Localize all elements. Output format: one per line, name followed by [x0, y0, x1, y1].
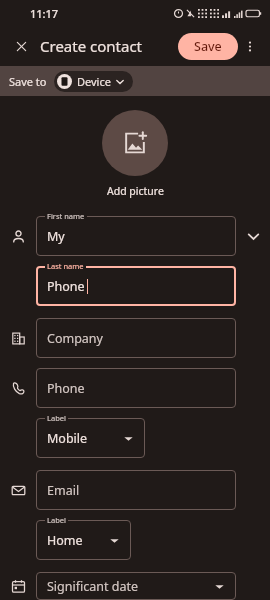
staticText: Email	[47, 482, 80, 499]
staticText: Home	[47, 532, 83, 549]
staticText: Significant date	[47, 578, 139, 595]
staticText: Add picture	[107, 184, 164, 198]
button[interactable]: Label	[36, 520, 131, 560]
button[interactable]: Company	[36, 318, 236, 358]
button[interactable]: Add picture	[102, 110, 168, 176]
staticText: Mobile	[47, 430, 88, 447]
staticText: First name	[47, 211, 85, 221]
staticText: Label	[47, 413, 66, 423]
staticText: My	[47, 228, 65, 245]
button[interactable]: First name	[36, 216, 236, 256]
button[interactable]: Device	[54, 71, 133, 92]
button[interactable]: Expand name fields	[236, 216, 270, 256]
staticText: Save to	[9, 74, 47, 89]
staticText: Device	[77, 74, 111, 89]
staticText: Last name	[47, 261, 84, 271]
staticText: Phone	[47, 278, 85, 295]
button[interactable]: Significant date	[36, 572, 236, 600]
staticText: Label	[47, 515, 66, 525]
staticText: 11:17	[30, 6, 59, 21]
button[interactable]: More options	[238, 34, 262, 58]
staticText: Save	[194, 38, 222, 55]
button[interactable]: Close	[8, 33, 34, 59]
staticText: Company	[47, 330, 103, 347]
button[interactable]: Last name	[36, 266, 236, 306]
button[interactable]: Save	[178, 33, 238, 60]
staticText: Create contact	[40, 36, 178, 56]
staticText: Phone	[47, 380, 85, 397]
button[interactable]: Email	[36, 470, 236, 510]
button[interactable]: Label	[36, 418, 145, 458]
button[interactable]: Phone	[36, 368, 236, 408]
